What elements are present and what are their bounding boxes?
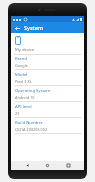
staticText: Model [15,72,28,78]
button[interactable]: Home [43,161,52,170]
button[interactable]: Operating System [11,87,84,103]
button[interactable]: Model [11,71,84,87]
staticText: System [24,24,44,31]
button[interactable]: Brand [11,55,84,71]
staticText: Brand [15,56,27,62]
staticText: Operating System [15,88,51,94]
button[interactable]: Back [13,24,21,32]
staticText: QQ1A.200205.002 [15,127,48,132]
staticText: Android 10 [15,95,35,100]
staticText: Google [15,63,28,68]
staticText: 29 [15,111,20,116]
staticText: My device [15,47,35,53]
staticText: Build Number [15,120,43,126]
staticText: API level [15,104,32,110]
button[interactable]: Recent apps [64,161,73,170]
button[interactable]: API level [11,103,84,119]
button[interactable]: Build Number [11,119,84,135]
staticText: Pixel 3 XL [15,79,32,84]
button[interactable]: Back [23,161,32,170]
